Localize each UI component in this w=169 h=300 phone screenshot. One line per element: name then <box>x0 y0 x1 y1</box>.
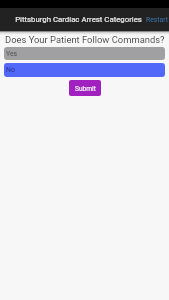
button[interactable]: Yes <box>4 47 165 60</box>
staticText: No <box>6 66 15 74</box>
staticText: Does Your Patient Follow Commands? <box>5 34 165 45</box>
staticText: Restart <box>146 16 168 24</box>
button[interactable]: Submit <box>69 80 101 96</box>
staticText: Submit <box>75 85 96 93</box>
staticText: Pittsburgh Cardiac Arrest Categories <box>15 15 142 24</box>
staticText: Yes <box>6 50 18 58</box>
button[interactable]: No <box>4 63 165 77</box>
button[interactable]: Restart <box>143 13 169 27</box>
